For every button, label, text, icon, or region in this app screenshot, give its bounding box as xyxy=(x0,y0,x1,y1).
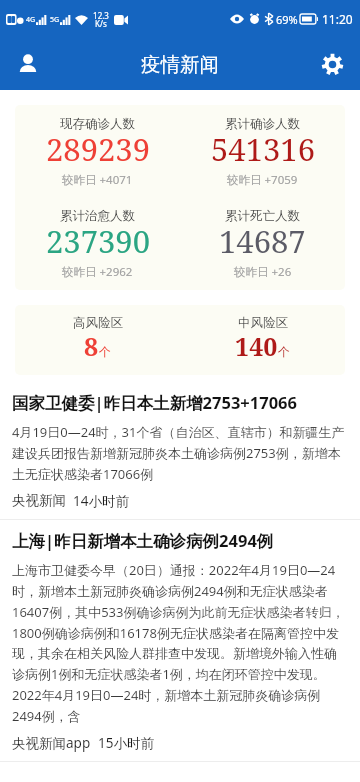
staticText: 央视新闻app xyxy=(12,734,91,752)
staticText: 541316 xyxy=(211,128,315,170)
staticText: 疫情新闻 xyxy=(141,52,219,77)
staticText: 15小时前 xyxy=(98,734,154,752)
staticText: 237390 xyxy=(46,220,150,262)
staticText: 国家卫健委|昨日本土新增2753+17066 xyxy=(12,391,297,414)
staticText: 中风险区 xyxy=(238,315,288,331)
staticText: 12.3 K/s xyxy=(93,10,109,29)
staticText: 高风险区 xyxy=(73,315,123,331)
staticText: 个 xyxy=(278,344,290,359)
staticText: 289239 xyxy=(46,128,150,170)
button[interactable]: 国家卫健委|昨日本土新增2753+17066 xyxy=(0,391,360,529)
staticText: 4G xyxy=(26,15,36,25)
staticText: 累计确诊人数 xyxy=(225,116,300,132)
staticText: 较昨日 +2962 xyxy=(62,264,133,280)
staticText: 较昨日 +7059 xyxy=(227,172,298,188)
staticText: 14小时前 xyxy=(73,492,129,510)
staticText: 较昨日 +26 xyxy=(234,264,292,280)
staticText: 央视新闻 xyxy=(12,492,66,509)
staticText: 较昨日 +4071 xyxy=(62,172,133,188)
staticText: 累计治愈人数 xyxy=(60,208,135,224)
staticText: 4月19日0—24时，31个省（自治区、直辖市）和新疆生产建设兵团报告新增新冠肺… xyxy=(12,423,348,483)
staticText: 累计死亡人数 xyxy=(225,208,300,224)
button[interactable]: Profile xyxy=(6,42,50,86)
button[interactable]: Settings xyxy=(310,42,354,86)
staticText: 14687 xyxy=(219,220,306,262)
staticText: 上海市卫健委今早（20日）通报：2022年4月19日0—24时，新增本土新冠肺炎… xyxy=(12,561,348,725)
staticText: 69% xyxy=(276,12,298,27)
staticText: 个 xyxy=(99,344,111,359)
staticText: 现存确诊人数 xyxy=(60,116,135,132)
staticText: 上海|昨日新增本土确诊病例2494例 xyxy=(12,529,274,552)
staticText: 11:20 xyxy=(322,11,353,27)
button[interactable]: 上海|昨日新增本土确诊病例2494例 xyxy=(0,529,360,771)
staticText: 8 xyxy=(84,329,99,363)
staticText: 140 xyxy=(235,329,278,363)
staticText: 5G xyxy=(50,15,60,25)
